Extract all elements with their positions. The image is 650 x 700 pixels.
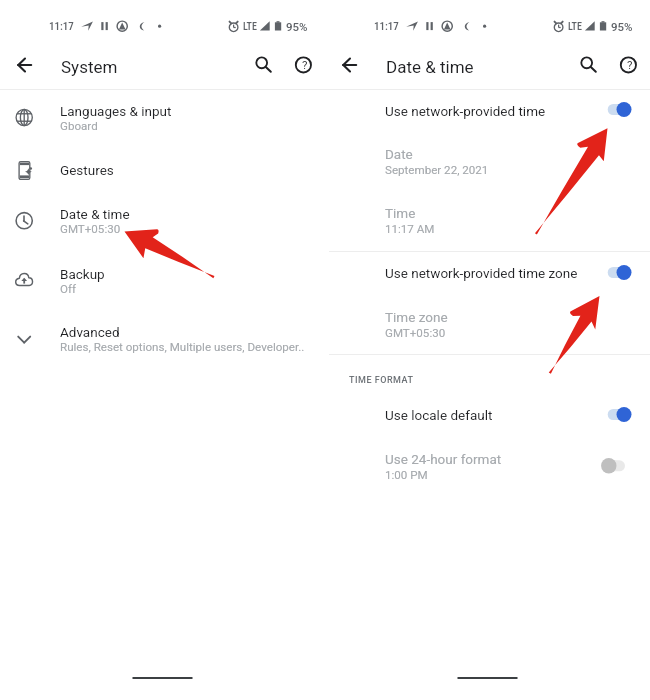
staticText: Off [60,282,77,296]
staticText: ? [302,58,308,71]
staticText: Backup [60,266,105,282]
button[interactable]: Navigate up [331,47,368,84]
staticText: ? [627,58,633,71]
staticText: 11:17 [49,20,74,33]
staticText: 95% [611,20,633,33]
staticText: September 22, 2021 [385,163,489,177]
button[interactable]: Navigate up [6,47,43,84]
button[interactable]: Date & time [0,196,325,250]
staticText: Date & time [386,57,474,77]
staticText: Use network-provided time [385,103,546,119]
button[interactable]: Help [286,47,322,83]
staticText: 11:17 [374,20,399,33]
staticText: 11:17 AM [385,222,435,236]
button[interactable]: Gestures [0,145,325,196]
staticText: GMT+05:30 [60,222,121,236]
button[interactable]: Use locale default [325,398,650,438]
staticText: Time [385,205,416,221]
staticText: 1:00 PM [385,468,428,482]
staticText: GMT+05:30 [385,326,446,340]
staticText: LTE [243,21,257,33]
staticText: Date [385,146,413,162]
staticText: Use 24-hour format [385,451,502,467]
button[interactable]: Help [611,47,647,83]
staticText: Time zone [385,309,448,325]
button[interactable]: Search [244,47,280,83]
staticText: LTE [568,21,582,33]
staticText: Gestures [60,162,114,178]
button[interactable]: Use network-provided time [325,94,650,134]
staticText: System [61,57,118,77]
button[interactable]: Advanced [0,308,325,362]
staticText: TIME FORMAT [349,375,414,386]
button[interactable]: Languages & input [0,94,325,145]
staticText: Gboard [60,119,98,133]
staticText: Advanced [60,324,120,340]
staticText: Use network-provided time zone [385,265,578,281]
button[interactable]: Backup [0,250,325,308]
button[interactable]: Search [569,47,605,83]
staticText: Languages & input [60,103,172,119]
staticText: Use locale default [385,407,493,423]
staticText: 95% [286,20,308,33]
button[interactable]: Use network-provided time zone [325,256,650,296]
staticText: Date & time [60,206,130,222]
staticText: Rules, Reset options, Multiple users, De… [60,340,305,354]
